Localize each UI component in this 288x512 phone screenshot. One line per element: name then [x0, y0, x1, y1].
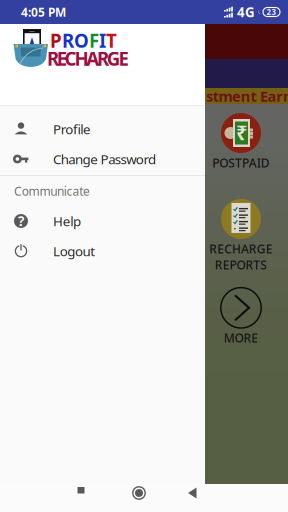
staticText: T: [106, 28, 117, 53]
staticText: stment Earn: [206, 86, 288, 106]
button[interactable]: Profile: [0, 114, 205, 144]
staticText: REPORTS: [215, 257, 267, 273]
staticText: RECHARGE: [47, 46, 129, 71]
staticText: 4:05 PM: [21, 4, 66, 20]
staticText: MORE: [224, 330, 258, 346]
button[interactable]: ₹: [205, 112, 277, 171]
button[interactable]: Logout: [0, 236, 205, 266]
staticText: ?: [18, 212, 24, 230]
staticText: Logout: [53, 242, 95, 260]
staticText: R: [62, 28, 74, 53]
staticText: POSTPAID: [212, 155, 270, 171]
button[interactable]: Home: [130, 484, 158, 512]
staticText: O: [74, 28, 89, 53]
button[interactable]: ?: [0, 206, 205, 236]
button[interactable]: Change Password: [0, 144, 205, 174]
button[interactable]: Recent apps: [75, 484, 103, 512]
staticText: Change Password: [53, 150, 156, 168]
staticText: P: [50, 28, 62, 53]
staticText: ₹: [236, 119, 247, 146]
staticText: Communicate: [14, 183, 90, 199]
button[interactable]: Back: [185, 484, 213, 512]
button[interactable]: RECHARGE: [205, 198, 277, 273]
staticText: Help: [53, 212, 81, 230]
staticText: Profile: [53, 120, 91, 138]
staticText: RECHARGE: [209, 241, 273, 257]
button[interactable]: MORE: [205, 287, 277, 346]
staticText: I: [99, 28, 106, 53]
staticText: 23: [266, 7, 276, 17]
staticText: F: [89, 28, 99, 53]
staticText: 4G: [237, 3, 255, 21]
